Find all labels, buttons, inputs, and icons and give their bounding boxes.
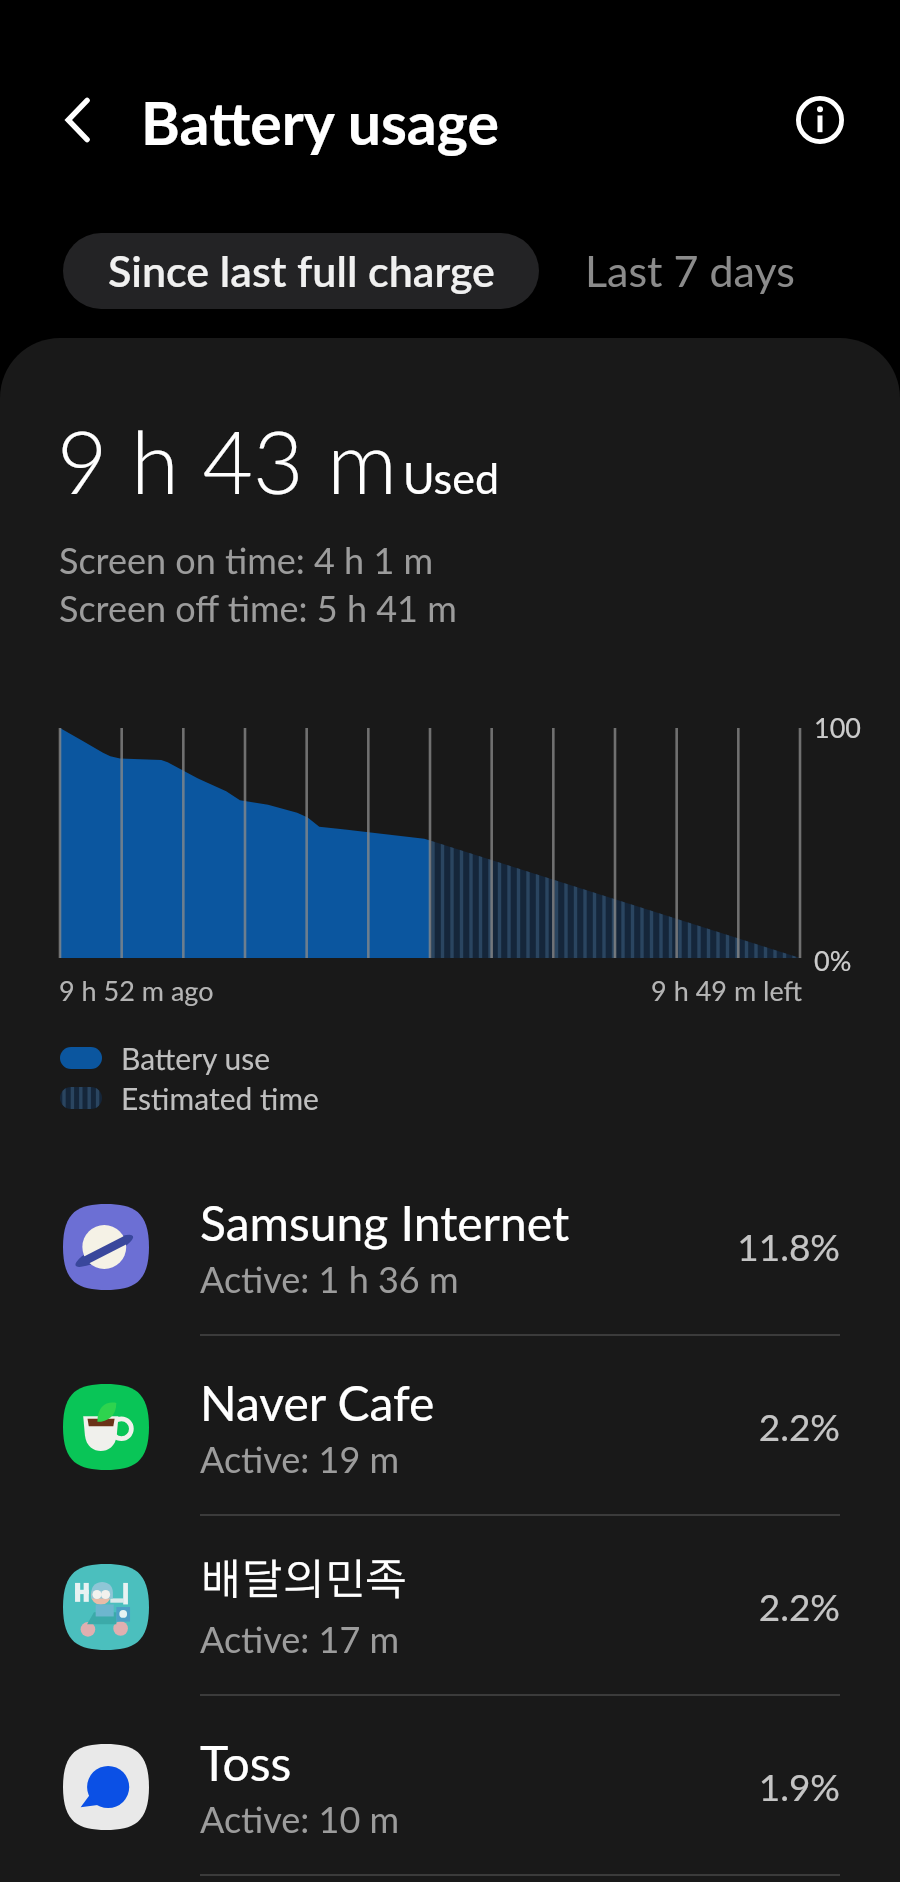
staticText: 9 h 52 m ago xyxy=(59,974,214,1006)
button[interactable]: About battery usage xyxy=(770,70,870,170)
staticText: Active: 10 m xyxy=(200,1797,400,1840)
staticText: 9 h 49 m left xyxy=(600,974,802,1006)
staticText: Used xyxy=(403,452,499,504)
staticText: Screen on time: 4 h 1 m xyxy=(59,538,434,581)
staticText: 2.2% xyxy=(580,1584,840,1628)
staticText: 2.2% xyxy=(580,1404,840,1448)
button[interactable]: Last 7 days xyxy=(555,233,825,309)
staticText: Last 7 days xyxy=(585,245,795,297)
button[interactable]: Navigate up xyxy=(27,70,127,170)
staticText: 0% xyxy=(814,944,852,976)
staticText: Active: 19 m xyxy=(200,1437,400,1480)
button[interactable]: Naver Cafe xyxy=(0,1360,900,1540)
button[interactable]: Since last full charge xyxy=(63,233,539,309)
button[interactable]: Toss xyxy=(0,1720,900,1882)
staticText: Samsung Internet xyxy=(200,1194,570,1252)
staticText: Toss xyxy=(200,1734,292,1792)
staticText: Since last full charge xyxy=(108,245,495,297)
button[interactable]: 배달의민족 xyxy=(0,1540,900,1720)
staticText: Screen off time: 5 h 41 m xyxy=(59,586,457,629)
staticText: Active: 1 h 36 m xyxy=(200,1257,459,1300)
staticText: Active: 17 m xyxy=(200,1617,400,1660)
staticText: 100 xyxy=(814,711,861,743)
staticText: 9 h 43 m xyxy=(57,408,398,512)
staticText: Estimated time xyxy=(121,1080,319,1116)
staticText: 1.9% xyxy=(580,1764,840,1808)
staticText: Battery usage xyxy=(141,87,499,158)
staticText: 11.8% xyxy=(580,1224,840,1268)
staticText: Naver Cafe xyxy=(200,1374,435,1432)
staticText: Battery use xyxy=(121,1040,271,1076)
staticText: 배달의민족 xyxy=(200,1560,407,1603)
button[interactable]: Samsung Internet xyxy=(0,1180,900,1360)
